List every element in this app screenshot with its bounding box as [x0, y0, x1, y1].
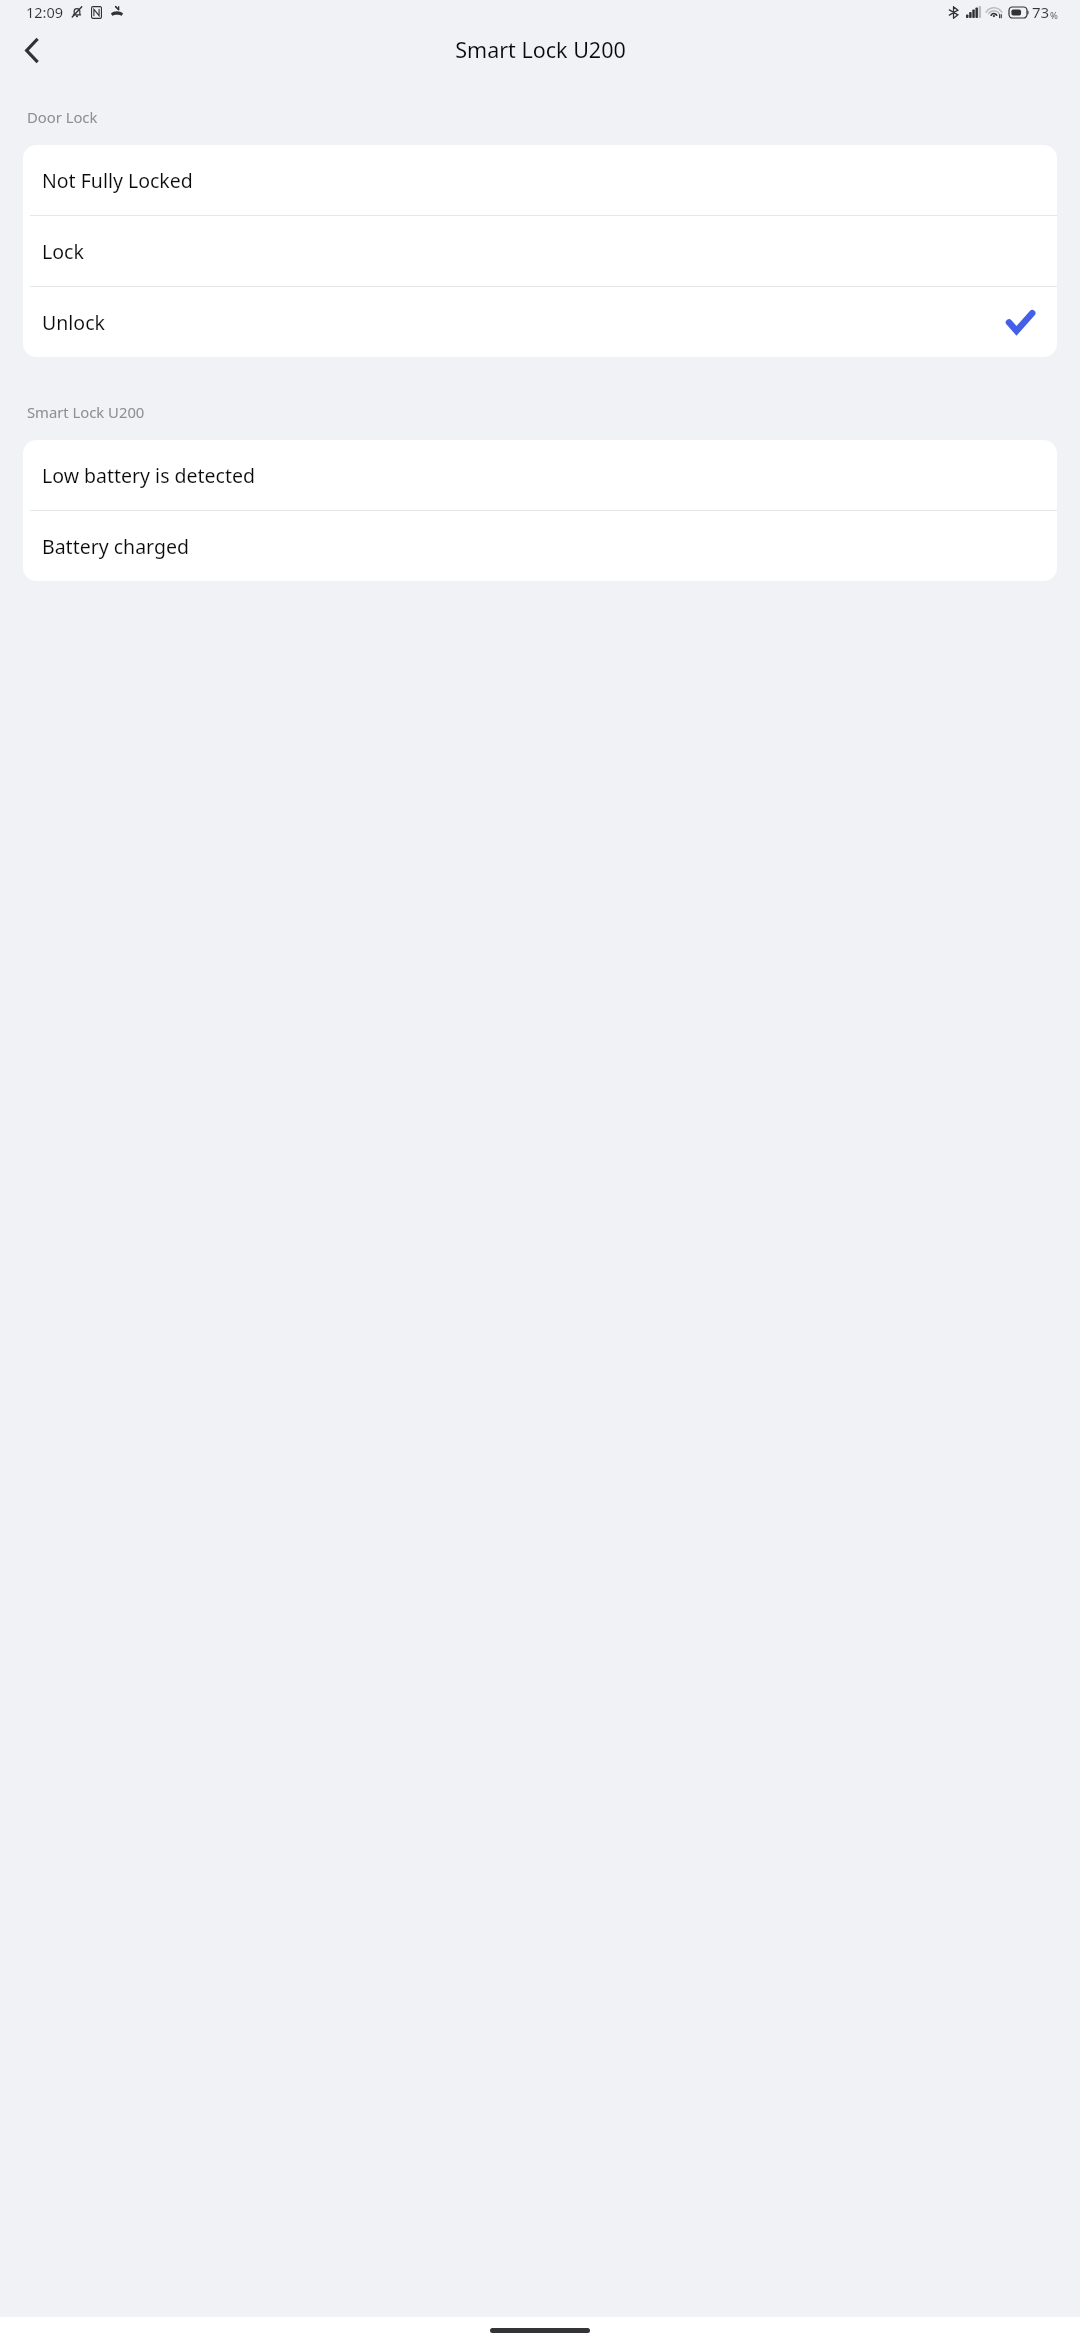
staticText: 73	[1032, 2, 1050, 22]
button[interactable]: Low battery is detected	[23, 440, 1057, 510]
staticText: Smart Lock U200	[455, 35, 626, 64]
button[interactable]: Not Fully Locked	[23, 145, 1057, 215]
staticText: %	[1050, 9, 1058, 22]
staticText: Low battery is detected	[42, 462, 1033, 489]
button[interactable]: Back	[7, 26, 55, 74]
staticText: Not Fully Locked	[42, 167, 1033, 194]
staticText: Smart Lock U200	[27, 402, 145, 422]
staticText: 12:09	[26, 2, 64, 22]
button[interactable]: Lock	[23, 216, 1057, 286]
staticText: Lock	[42, 238, 1033, 265]
staticText: Door Lock	[27, 107, 98, 127]
staticText: Battery charged	[42, 533, 1033, 560]
button[interactable]: Unlock	[23, 287, 1057, 357]
staticText: Unlock	[42, 309, 1008, 336]
button[interactable]: Battery charged	[23, 511, 1057, 581]
